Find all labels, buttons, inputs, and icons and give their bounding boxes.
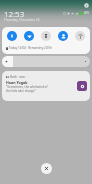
button[interactable]: Settings bbox=[83, 2, 90, 9]
staticText: "Sometimes, the whirlwind of the kids ta… bbox=[6, 85, 72, 93]
staticText: Bath · now · bbox=[10, 75, 27, 79]
button[interactable]: Clear all notifications bbox=[41, 163, 52, 174]
button[interactable]: Wi-Fi bbox=[24, 31, 34, 41]
button[interactable]: Account bbox=[58, 31, 68, 41]
button[interactable]: Flashlight bbox=[41, 31, 51, 41]
button[interactable]: Brightness bbox=[2, 56, 90, 67]
staticText: 12:53 bbox=[4, 8, 25, 19]
button[interactable]: Bath · now · bbox=[2, 71, 90, 101]
button[interactable]: Internet bbox=[7, 31, 17, 41]
staticText: Thursday, December 26 bbox=[4, 18, 40, 22]
staticText: Today 14:04 · Remaining 2:05h bbox=[9, 46, 52, 50]
staticText: 88% bbox=[84, 11, 90, 15]
button[interactable]: Cast bbox=[75, 31, 85, 41]
staticText: Hoan Yogak bbox=[6, 80, 28, 85]
